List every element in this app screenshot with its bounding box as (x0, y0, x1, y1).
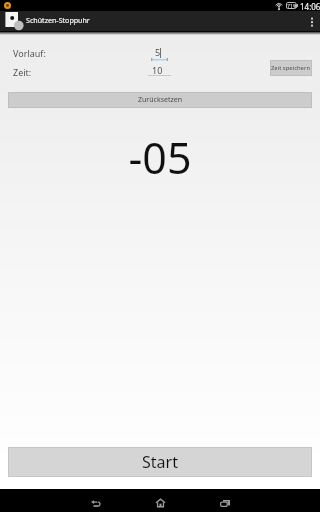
button[interactable]: 10 (145, 62, 169, 78)
button[interactable]: Zurücksetzen (8, 92, 312, 108)
staticText: 10 (152, 64, 163, 76)
staticText: 14:06 (300, 1, 320, 12)
button[interactable]: Recent apps (201, 492, 249, 512)
button[interactable]: More options (304, 11, 320, 32)
button[interactable]: 5 (148, 44, 172, 60)
staticText: Start (142, 451, 178, 473)
staticText: 71% (287, 2, 298, 9)
staticText: Vorlauf: (13, 47, 46, 59)
staticText: Zurücksetzen (138, 95, 183, 105)
staticText: Zeit: (13, 66, 32, 78)
button[interactable]: Back (71, 492, 119, 512)
staticText: Zeit speichern (271, 64, 311, 72)
button[interactable]: Zeit speichern (270, 60, 312, 76)
button[interactable]: Home (136, 491, 184, 512)
staticText: Schützen-Stoppuhr (26, 15, 90, 25)
staticText: -05 (128, 128, 192, 178)
button[interactable]: Start (8, 447, 312, 477)
staticText: 5 (155, 46, 161, 58)
